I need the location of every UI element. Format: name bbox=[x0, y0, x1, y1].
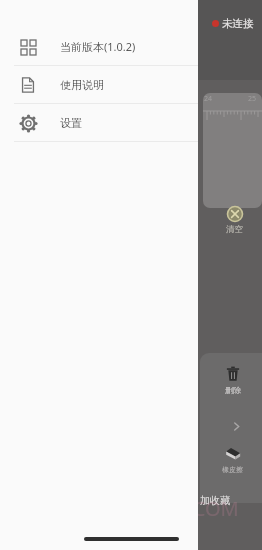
button[interactable]: 设置 bbox=[0, 104, 198, 141]
staticText: 24 bbox=[204, 94, 213, 104]
button[interactable]: 清空 bbox=[223, 203, 246, 238]
other: 清空 bbox=[227, 206, 243, 222]
button[interactable]: 未连接 bbox=[210, 14, 256, 33]
button[interactable]: 使用说明 bbox=[0, 66, 198, 103]
button[interactable]: 删除 bbox=[222, 363, 244, 397]
other: 橡皮擦 bbox=[223, 444, 243, 464]
staticText: 新意手游 · SJXINYI.COM bbox=[24, 495, 239, 522]
staticText: 橡皮擦 bbox=[222, 465, 243, 474]
button[interactable]: 当前版本(1.0.2) bbox=[0, 28, 198, 65]
button[interactable]: 加收藏 bbox=[200, 494, 230, 507]
staticText: 清空 bbox=[226, 224, 243, 235]
staticText: 未连接 bbox=[222, 17, 254, 30]
staticText: 当前版本(1.0.2) bbox=[60, 39, 136, 54]
button[interactable]: More bbox=[227, 417, 245, 435]
other: 删除 bbox=[224, 365, 242, 383]
button[interactable]: 橡皮擦 bbox=[220, 442, 245, 476]
staticText: 设置 bbox=[60, 116, 82, 130]
staticText: 删除 bbox=[225, 385, 241, 395]
staticText: 使用说明 bbox=[60, 78, 104, 92]
staticText: 25 bbox=[248, 94, 257, 104]
button[interactable]: 24 bbox=[203, 93, 262, 208]
